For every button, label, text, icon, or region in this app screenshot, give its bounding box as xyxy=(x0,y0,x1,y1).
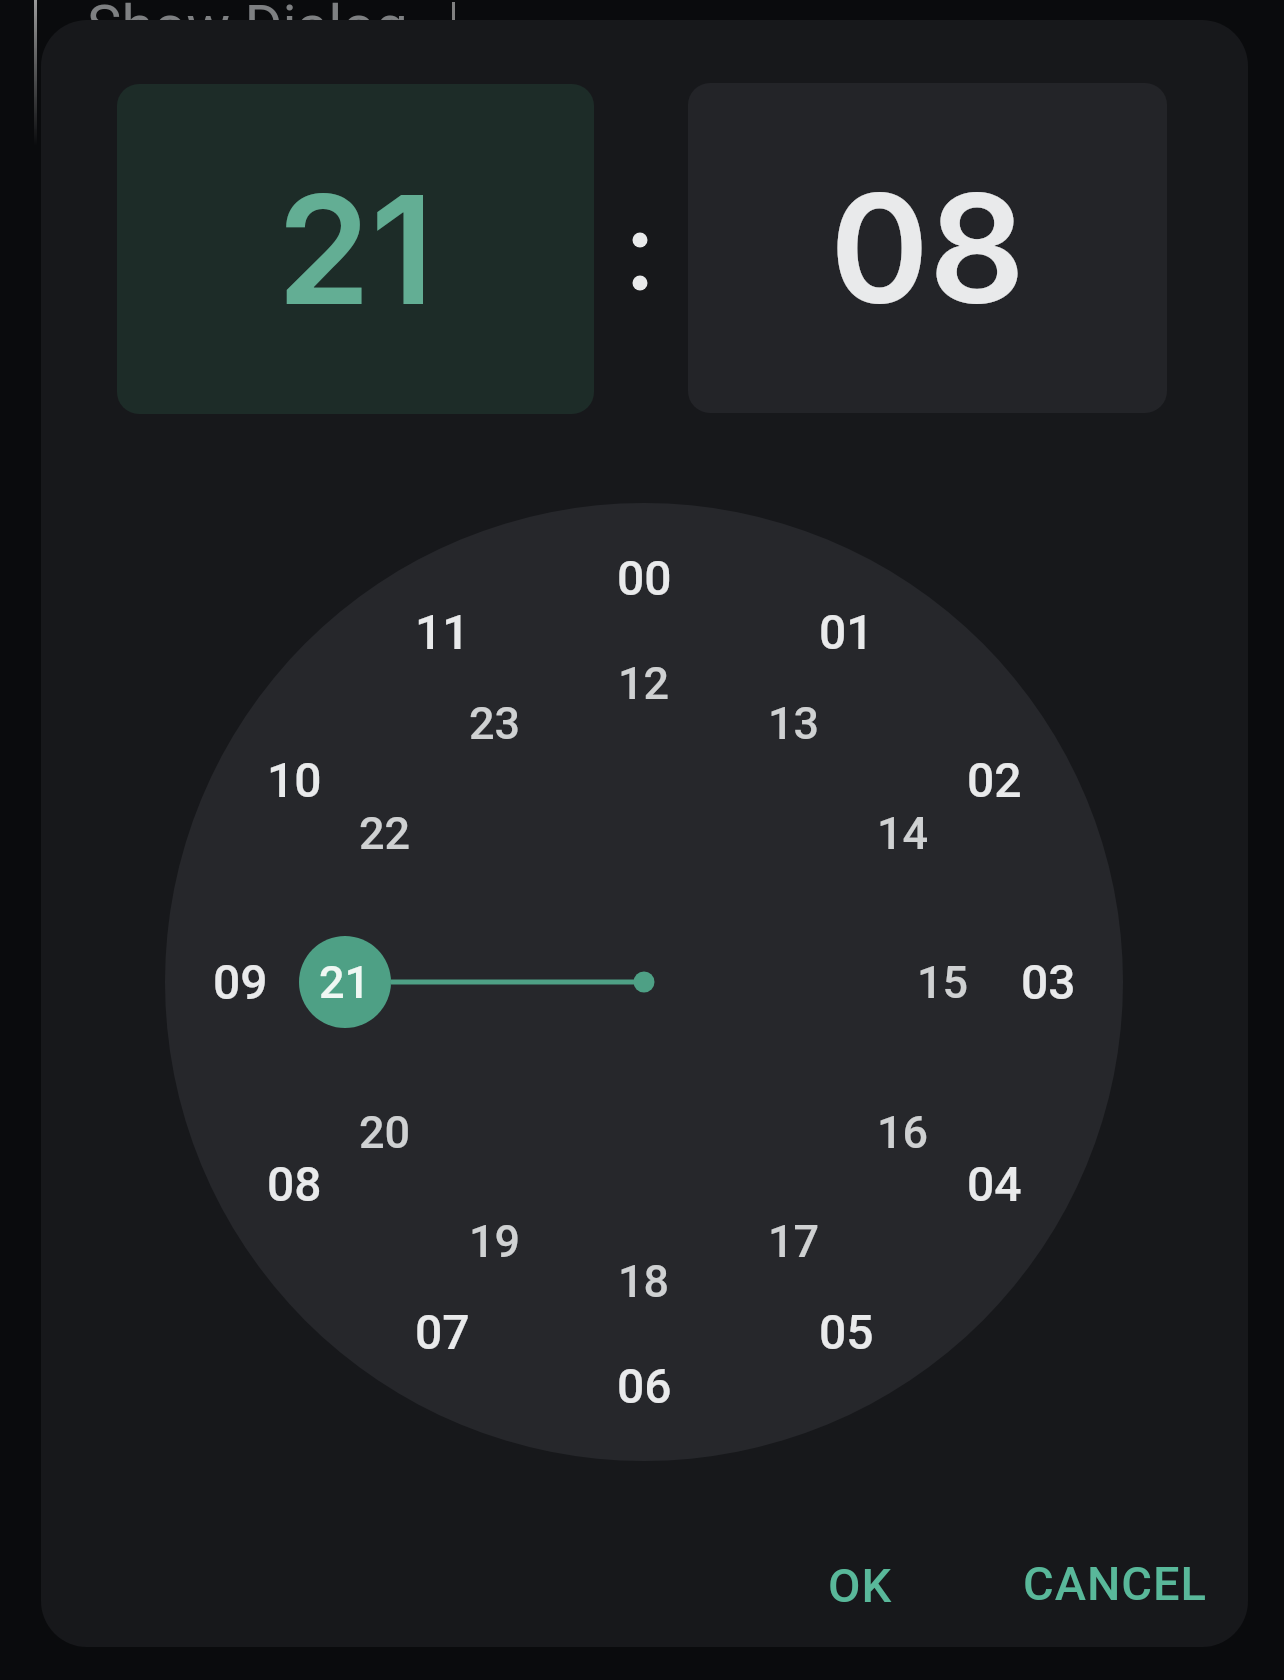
staticText: 16 xyxy=(877,1106,929,1159)
button[interactable]: 08 xyxy=(688,83,1167,413)
staticText: 09 xyxy=(213,954,268,1010)
staticText: 10 xyxy=(267,752,322,808)
staticText: 11 xyxy=(415,604,470,660)
staticText: CANCEL xyxy=(1023,1556,1208,1611)
staticText: 01 xyxy=(819,604,874,660)
staticText: 20 xyxy=(359,1106,411,1159)
staticText: 07 xyxy=(415,1304,470,1360)
staticText: 22 xyxy=(359,807,411,860)
staticText: 13 xyxy=(768,697,820,750)
staticText: 18 xyxy=(618,1255,670,1308)
staticText: OK xyxy=(828,1558,893,1613)
staticText: 02 xyxy=(967,752,1022,808)
staticText: 08 xyxy=(830,158,1025,339)
staticText: 03 xyxy=(1021,954,1076,1010)
button[interactable]: 21 xyxy=(117,84,594,414)
staticText: 14 xyxy=(877,807,929,860)
button[interactable]: CANCEL xyxy=(990,1543,1240,1623)
staticText: 05 xyxy=(819,1304,874,1360)
staticText: 06 xyxy=(617,1358,672,1414)
staticText: 23 xyxy=(469,697,521,750)
staticText: 21 xyxy=(277,159,434,340)
staticText: 00 xyxy=(617,550,672,606)
staticText: Show Dialog xyxy=(87,0,408,60)
staticText: 12 xyxy=(618,657,670,710)
staticText: 15 xyxy=(917,956,969,1009)
staticText: 21 xyxy=(319,956,371,1009)
button[interactable]: OK xyxy=(785,1545,935,1625)
staticText: 08 xyxy=(267,1156,322,1212)
staticText: 17 xyxy=(768,1215,820,1268)
staticText: 04 xyxy=(967,1156,1022,1212)
staticText: 19 xyxy=(469,1215,521,1268)
